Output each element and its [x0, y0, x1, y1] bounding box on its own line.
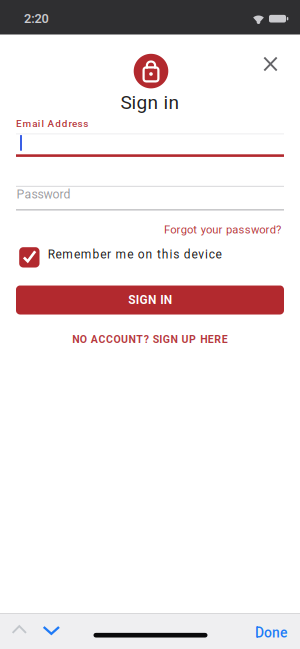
button[interactable]: Next field — [37, 619, 65, 642]
staticText: Sign in — [120, 91, 179, 114]
staticText: NO ACCOUNT? SIGN UP HERE — [72, 333, 228, 345]
button[interactable]: Previous field — [6, 618, 32, 641]
button[interactable]: Close — [256, 49, 285, 78]
button[interactable]: SIGN IN — [16, 285, 284, 314]
button[interactable]: Done — [250, 621, 292, 645]
staticText: Password — [16, 187, 70, 201]
staticText: Remember me on this device — [48, 247, 222, 261]
button[interactable]: Forgot your password? — [164, 223, 281, 236]
staticText: 2:20 — [24, 11, 49, 26]
button[interactable]: Remember me on this device — [19, 247, 193, 267]
staticText: SIGN IN — [128, 293, 172, 307]
button[interactable]: NO ACCOUNT? SIGN UP HERE — [72, 333, 228, 345]
staticText: Forgot your password? — [164, 223, 281, 236]
staticText: Done — [255, 625, 287, 641]
staticText: Email Address — [16, 118, 88, 129]
